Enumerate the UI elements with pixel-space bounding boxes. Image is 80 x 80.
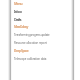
button[interactable]: Menu — [14, 1, 22, 6]
button[interactable]: Mars Colony — [14, 25, 28, 29]
button[interactable]: Terraforming progress update — [14, 33, 50, 37]
button[interactable]: Resource allocation report — [14, 41, 47, 45]
button[interactable]: Inbox — [14, 9, 22, 14]
staticText: Inbox — [14, 9, 22, 14]
button[interactable]: Telescope calibration data — [14, 57, 47, 61]
button[interactable]: Drafts — [14, 17, 21, 22]
staticText: Menu — [14, 1, 22, 6]
staticText: Telescope calibration data — [14, 57, 47, 61]
button[interactable]: Deep Space — [14, 49, 29, 53]
staticText: Drafts — [14, 17, 21, 22]
staticText: Mars Colony — [14, 25, 28, 29]
staticText: Deep Space — [14, 49, 29, 53]
staticText: Resource allocation report — [14, 41, 47, 45]
staticText: Terraforming progress update — [14, 33, 50, 37]
